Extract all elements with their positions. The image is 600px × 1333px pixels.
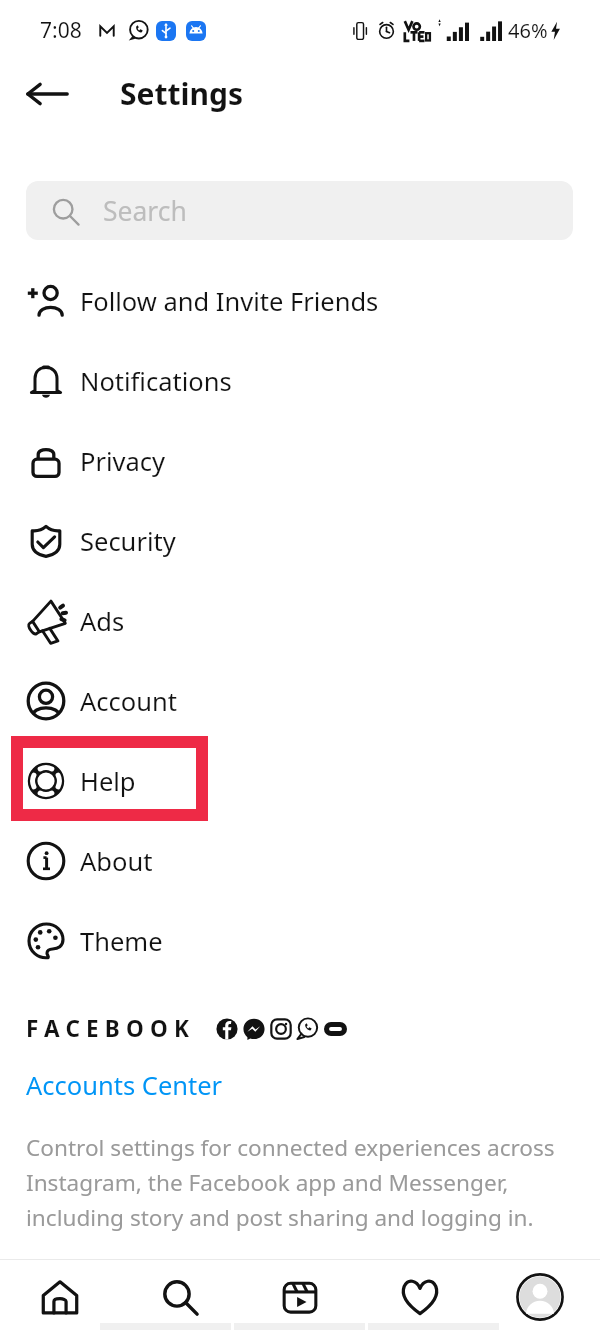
staticText: Theme bbox=[80, 924, 163, 959]
staticText: Follow and Invite Friends bbox=[80, 284, 379, 319]
staticText: 46% bbox=[508, 17, 548, 44]
button[interactable]: Home bbox=[0, 1260, 120, 1333]
staticText: About bbox=[80, 844, 153, 879]
button[interactable]: Notifications bbox=[0, 341, 600, 421]
staticText: Notifications bbox=[80, 364, 232, 399]
button[interactable]: Search bbox=[26, 181, 573, 240]
staticText: FACEBOOK bbox=[26, 1013, 196, 1044]
button[interactable]: Back bbox=[16, 62, 79, 125]
staticText: Help bbox=[80, 764, 136, 799]
button[interactable]: Profile bbox=[480, 1260, 600, 1333]
button[interactable]: Ads bbox=[0, 581, 600, 661]
staticText: Account bbox=[80, 684, 177, 719]
staticText: 7:08 bbox=[40, 16, 82, 45]
button[interactable]: About bbox=[0, 821, 600, 901]
button[interactable]: Account bbox=[0, 661, 600, 741]
button[interactable]: Reels bbox=[240, 1260, 360, 1333]
button[interactable]: Follow and Invite Friends bbox=[0, 261, 600, 341]
button[interactable]: Security bbox=[0, 501, 600, 581]
staticText: Settings bbox=[120, 73, 243, 114]
staticText: Control settings for connected experienc… bbox=[26, 1132, 574, 1233]
button[interactable]: Search bbox=[120, 1260, 240, 1333]
button[interactable]: Privacy bbox=[0, 421, 600, 501]
staticText: Ads bbox=[80, 604, 125, 639]
staticText: Privacy bbox=[80, 444, 166, 479]
button[interactable]: Help bbox=[0, 741, 600, 821]
staticText: Security bbox=[80, 524, 176, 559]
button[interactable]: Accounts Center bbox=[26, 1068, 223, 1103]
button[interactable]: Activity bbox=[360, 1260, 480, 1333]
staticText: Search bbox=[103, 193, 187, 229]
button[interactable]: Theme bbox=[0, 901, 600, 981]
